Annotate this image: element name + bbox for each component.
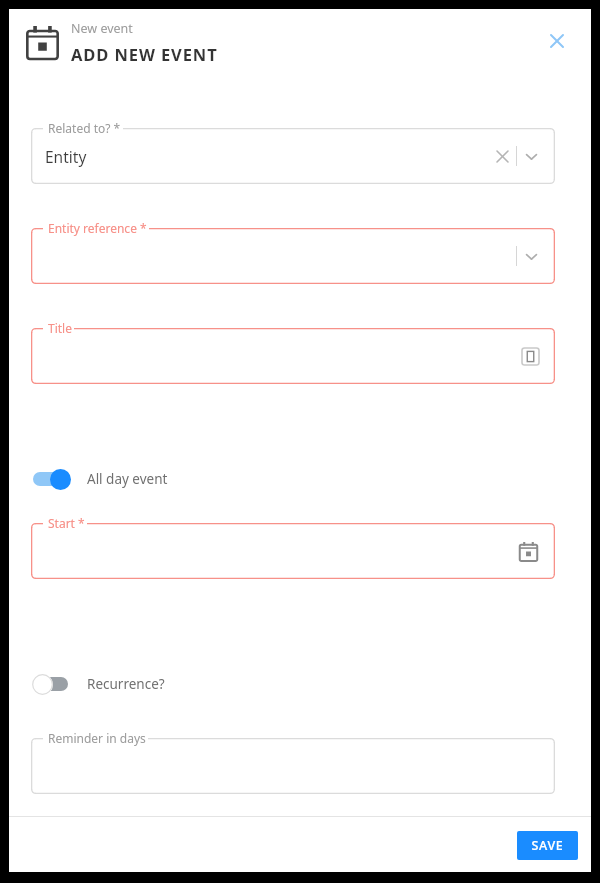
button[interactable]: SAVE [517,831,578,860]
button[interactable]: All day event [31,459,168,499]
staticText: Entity reference * [48,220,147,236]
staticText: Reminder in days [48,730,146,746]
staticText: Related to? * [48,120,121,136]
button[interactable]: Select title [517,343,543,369]
button[interactable]: Recurrence? [31,664,165,704]
button[interactable]: Clear selection [488,142,516,170]
staticText: ADD NEW EVENT [71,43,218,65]
button[interactable]: Entity [31,128,555,184]
button[interactable]: Pick date [31,523,555,579]
staticText: Recurrence? [87,675,165,693]
button[interactable]: Open dropdown [31,228,555,284]
staticText: New event [71,20,133,37]
button[interactable]: Pick date [513,536,543,566]
button[interactable] [31,738,555,794]
button[interactable]: Select title [31,328,555,384]
staticText: SAVE [531,837,564,854]
button[interactable]: Open dropdown [517,142,545,170]
staticText: Entity [45,146,87,167]
staticText: Title [48,320,72,336]
button[interactable]: Close [539,23,575,59]
button[interactable]: Open dropdown [517,242,545,270]
staticText: Start * [48,515,85,531]
staticText: All day event [87,470,168,488]
